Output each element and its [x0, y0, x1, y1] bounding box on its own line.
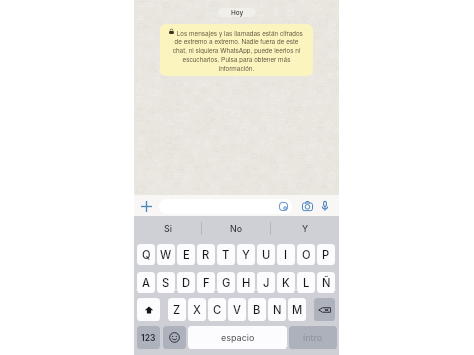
button[interactable]: Hoy: [218, 8, 256, 17]
button[interactable]: No: [202, 216, 270, 240]
staticText: G: [222, 276, 231, 290]
button[interactable]: Shift: [137, 298, 160, 321]
button[interactable]: X: [188, 298, 206, 321]
staticText: espacio: [221, 332, 255, 343]
button[interactable]: K: [277, 272, 295, 293]
button[interactable]: Q: [137, 244, 155, 265]
button[interactable]: Emoji: [163, 326, 186, 349]
staticText: 123: [141, 333, 156, 343]
staticText: I: [284, 248, 288, 262]
button[interactable]: Los mensajes y las llamadas están cifrad…: [160, 24, 313, 76]
staticText: P: [322, 248, 330, 262]
staticText: intro: [303, 332, 323, 343]
button[interactable]: espacio: [188, 326, 287, 349]
button[interactable]: R: [197, 244, 215, 265]
staticText: Ñ: [322, 276, 331, 290]
button[interactable]: W: [157, 244, 175, 265]
staticText: Hoy: [231, 9, 244, 17]
button[interactable]: S: [157, 272, 175, 293]
staticText: M: [292, 303, 303, 317]
staticText: B: [253, 303, 261, 317]
button[interactable]: J: [257, 272, 275, 293]
staticText: Z: [173, 303, 181, 317]
staticText: D: [182, 276, 191, 290]
button[interactable]: Si: [134, 216, 201, 240]
button[interactable]: H: [237, 272, 255, 293]
button[interactable]: intro: [289, 326, 337, 349]
staticText: K: [282, 276, 290, 290]
button[interactable]: Z: [168, 298, 186, 321]
button[interactable]: Y: [237, 244, 255, 265]
button[interactable]: G: [217, 272, 235, 293]
staticText: L: [303, 276, 310, 290]
button[interactable]: B: [248, 298, 266, 321]
button[interactable]: [159, 199, 292, 214]
button[interactable]: O: [297, 244, 315, 265]
staticText: V: [233, 303, 241, 317]
staticText: U: [262, 248, 271, 262]
button[interactable]: Camera: [300, 199, 315, 213]
staticText: J: [263, 276, 270, 290]
button[interactable]: D: [177, 272, 195, 293]
staticText: W: [160, 248, 172, 262]
staticText: O: [302, 248, 311, 262]
staticText: Q: [142, 248, 151, 262]
button[interactable]: P: [317, 244, 335, 265]
button[interactable]: A: [137, 272, 155, 293]
staticText: Y: [302, 223, 309, 234]
staticText: S: [162, 276, 170, 290]
staticText: N: [273, 303, 282, 317]
staticText: H: [242, 276, 251, 290]
button[interactable]: Voice message: [318, 199, 332, 213]
button[interactable]: U: [257, 244, 275, 265]
button[interactable]: Y: [271, 216, 339, 240]
staticText: No: [230, 223, 242, 234]
button[interactable]: Backspace: [314, 298, 335, 321]
button[interactable]: L: [297, 272, 315, 293]
button[interactable]: I: [277, 244, 295, 265]
button[interactable]: F: [197, 272, 215, 293]
button[interactable]: V: [228, 298, 246, 321]
staticText: Los mensajes y las llamadas están cifrad…: [170, 28, 303, 73]
button[interactable]: N: [268, 298, 286, 321]
button[interactable]: M: [288, 298, 306, 321]
button[interactable]: E: [177, 244, 195, 265]
staticText: Si: [164, 223, 172, 234]
staticText: E: [183, 248, 190, 262]
staticText: C: [213, 303, 222, 317]
button[interactable]: T: [217, 244, 235, 265]
button[interactable]: C: [208, 298, 226, 321]
staticText: A: [142, 276, 150, 290]
staticText: T: [222, 248, 230, 262]
staticText: X: [193, 303, 201, 317]
button[interactable]: Ñ: [317, 272, 335, 293]
staticText: Y: [242, 248, 250, 262]
button[interactable]: Attach: [139, 199, 154, 214]
staticText: F: [203, 276, 210, 290]
staticText: R: [202, 248, 210, 262]
button[interactable]: 123: [137, 326, 160, 349]
